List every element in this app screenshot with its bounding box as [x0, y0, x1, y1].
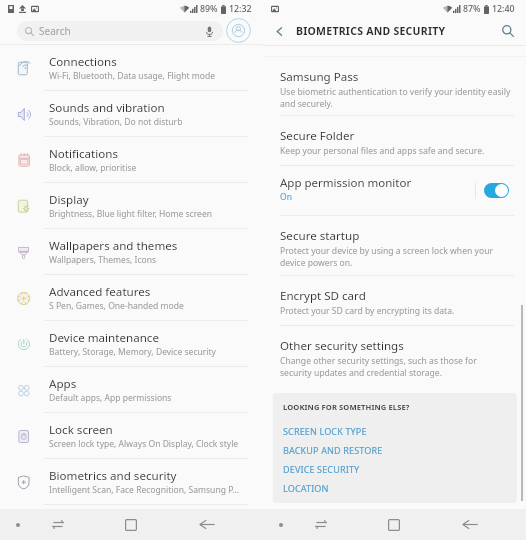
- staticText: Battery, Storage, Memory, Device securit…: [49, 346, 216, 358]
- button[interactable]: BACKUP AND RESTORE: [283, 440, 517, 459]
- button[interactable]: Advanced features: [0, 275, 263, 321]
- staticText: Apps: [49, 376, 77, 392]
- button[interactable]: Display: [0, 183, 263, 229]
- button[interactable]: Recents: [298, 509, 344, 540]
- button[interactable]: App permission monitor: [484, 183, 509, 198]
- staticText: 89%: [200, 3, 218, 15]
- button[interactable]: Secure startup: [263, 216, 526, 276]
- button[interactable]: Menu: [263, 509, 298, 540]
- button[interactable]: Encrypt SD card: [263, 276, 526, 326]
- button[interactable]: Back: [444, 509, 526, 540]
- button[interactable]: Home: [344, 509, 444, 540]
- staticText: Protect your SD card by encrypting its d…: [280, 305, 455, 317]
- button[interactable]: Back: [181, 509, 263, 540]
- staticText: 12:32: [229, 3, 252, 15]
- staticText: Intelligent Scan, Face Recognition, Sams…: [49, 484, 240, 496]
- button[interactable]: Samsung Pass: [263, 57, 526, 116]
- staticText: Search: [39, 24, 71, 38]
- staticText: Brightness, Blue light filter, Home scre…: [49, 208, 213, 220]
- staticText: Change other security settings, such as …: [280, 355, 477, 379]
- button[interactable]: DEVICE SECURITY: [283, 459, 517, 478]
- staticText: S Pen, Games, One-handed mode: [49, 300, 184, 312]
- button[interactable]: Search: [498, 21, 518, 41]
- staticText: Wallpapers and themes: [49, 238, 178, 254]
- staticText: Advanced features: [49, 284, 151, 300]
- staticText: Keep your personal files and apps safe a…: [280, 145, 485, 157]
- staticText: Block, allow, prioritise: [49, 162, 137, 174]
- staticText: BACKUP AND RESTORE: [283, 444, 383, 456]
- button[interactable]: Recents: [35, 509, 81, 540]
- staticText: Device maintenance: [49, 330, 159, 346]
- button[interactable]: Biometrics and security: [0, 459, 263, 505]
- button[interactable]: App permission monitor: [263, 166, 526, 216]
- button[interactable]: Connections: [0, 45, 263, 91]
- staticText: On: [280, 191, 292, 203]
- staticText: Wi-Fi, Bluetooth, Data usage, Flight mod…: [49, 70, 216, 82]
- button[interactable]: Menu: [0, 509, 35, 540]
- button[interactable]: Device maintenance: [0, 321, 263, 367]
- button[interactable]: Home: [81, 509, 181, 540]
- staticText: DEVICE SECURITY: [283, 463, 360, 475]
- staticText: Biometrics and security: [49, 468, 177, 484]
- staticText: Wallpapers, Themes, Icons: [49, 254, 157, 266]
- staticText: SCREEN LOCK TYPE: [283, 425, 367, 437]
- staticText: BIOMETRICS AND SECURITY: [296, 24, 446, 38]
- staticText: Notifications: [49, 146, 118, 162]
- button[interactable]: Sounds and vibration: [0, 91, 263, 137]
- staticText: 12:40: [492, 3, 515, 15]
- button[interactable]: Secure Folder: [263, 116, 526, 166]
- button[interactable]: Back: [269, 21, 289, 41]
- staticText: Connections: [49, 54, 117, 70]
- staticText: Screen lock type, Always On Display, Clo…: [49, 438, 239, 450]
- button[interactable]: Other security settings: [263, 326, 526, 388]
- button[interactable]: Wallpapers and themes: [0, 229, 263, 275]
- staticText: Lock screen: [49, 422, 113, 438]
- staticText: Secure Folder: [280, 128, 355, 144]
- staticText: 87%: [463, 3, 481, 15]
- button[interactable]: Lock screen: [0, 413, 263, 459]
- staticText: Other security settings: [280, 338, 404, 354]
- staticText: Protect your device by using a screen lo…: [280, 245, 493, 269]
- staticText: Sounds and vibration: [49, 100, 165, 116]
- staticText: Samsung Pass: [280, 69, 359, 85]
- staticText: Sounds, Vibration, Do not disturb: [49, 116, 183, 128]
- button[interactable]: Account: [226, 18, 251, 43]
- staticText: Encrypt SD card: [280, 288, 366, 304]
- staticText: Default apps, App permissions: [49, 392, 172, 404]
- button[interactable]: SCREEN LOCK TYPE: [283, 421, 517, 440]
- staticText: Display: [49, 192, 89, 208]
- staticText: LOCATION: [283, 482, 329, 494]
- staticText: Secure startup: [280, 228, 360, 244]
- staticText: App permission monitor: [280, 175, 412, 191]
- button[interactable]: Search: [17, 21, 223, 41]
- staticText: LOOKING FOR SOMETHING ELSE?: [283, 402, 410, 412]
- button[interactable]: LOCATION: [283, 478, 517, 497]
- button[interactable]: Apps: [0, 367, 263, 413]
- staticText: Use biometric authentication to verify y…: [280, 86, 511, 110]
- button[interactable]: Notifications: [0, 137, 263, 183]
